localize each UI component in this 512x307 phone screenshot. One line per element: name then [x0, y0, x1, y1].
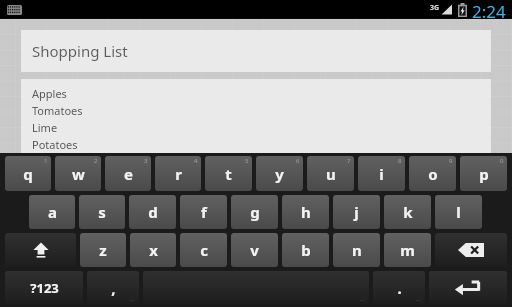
staticText: Tomatoes — [32, 103, 83, 118]
staticText: d — [148, 202, 158, 222]
staticText: 2 — [94, 157, 98, 165]
staticText: ?123 — [30, 279, 59, 297]
staticText: 7 — [347, 157, 351, 165]
staticText: 9 — [449, 157, 453, 165]
button[interactable]: l — [435, 195, 482, 229]
button[interactable]: ?123 — [5, 271, 83, 304]
button[interactable]: d — [129, 195, 176, 229]
staticText: 0 — [500, 157, 504, 165]
staticText: 2:24 — [472, 0, 506, 19]
button[interactable]: m — [384, 233, 431, 267]
staticText: l — [456, 202, 461, 222]
button[interactable]: Shopping List — [21, 30, 491, 72]
button[interactable]: w — [55, 156, 101, 191]
staticText: ... — [360, 295, 365, 303]
staticText: n — [352, 240, 362, 260]
staticText: , — [111, 278, 116, 298]
staticText: i — [379, 164, 384, 184]
button[interactable]: p — [460, 156, 507, 191]
staticText: t — [225, 164, 232, 184]
staticText: . — [397, 278, 402, 298]
button[interactable]: g — [231, 195, 278, 229]
staticText: z — [99, 240, 107, 260]
button[interactable]: . — [373, 271, 425, 304]
staticText: c — [200, 240, 208, 260]
staticText: b — [301, 240, 311, 260]
button[interactable]: i — [358, 156, 405, 191]
button[interactable]: Shift — [5, 233, 76, 267]
staticText: f — [201, 202, 207, 222]
staticText: j — [354, 202, 359, 222]
staticText: p — [479, 164, 489, 184]
button[interactable]: q — [5, 156, 51, 191]
staticText: k — [403, 202, 413, 222]
staticText: a — [48, 202, 57, 222]
button[interactable]: k — [384, 195, 431, 229]
button[interactable]: u — [307, 156, 354, 191]
staticText: Apples — [32, 86, 67, 101]
staticText: 4 — [194, 157, 198, 165]
staticText: q — [23, 164, 33, 184]
button[interactable]: Backspace — [435, 233, 507, 267]
staticText: g — [250, 202, 260, 222]
staticText: x — [149, 240, 158, 260]
staticText: 3 — [144, 157, 148, 165]
button[interactable]: n — [333, 233, 380, 267]
button[interactable]: e — [105, 156, 151, 191]
staticText: w — [72, 164, 85, 184]
staticText: m — [400, 240, 415, 260]
button[interactable]: v — [231, 233, 278, 267]
staticText: s — [98, 202, 106, 222]
staticText: 8 — [398, 157, 402, 165]
button[interactable]: x — [130, 233, 176, 267]
staticText: Potatoes — [32, 137, 78, 151]
staticText: o — [428, 164, 438, 184]
button[interactable]: s — [79, 195, 125, 229]
button[interactable]: t — [205, 156, 252, 191]
button[interactable]: Enter — [429, 271, 507, 304]
button[interactable]: a — [29, 195, 75, 229]
button[interactable]: Space — [143, 271, 369, 304]
button[interactable]: c — [180, 233, 227, 267]
button[interactable]: o — [409, 156, 456, 191]
button[interactable]: h — [282, 195, 329, 229]
button[interactable]: j — [333, 195, 380, 229]
staticText: r — [175, 164, 182, 184]
staticText: v — [250, 240, 259, 260]
staticText: Shopping List — [32, 41, 128, 61]
button[interactable]: , — [87, 271, 139, 304]
other: Keyboard notification — [7, 5, 22, 15]
staticText: 5 — [245, 157, 249, 165]
button[interactable]: Apples — [21, 79, 491, 153]
button[interactable]: y — [256, 156, 303, 191]
staticText: h — [301, 202, 311, 222]
staticText: Lime — [32, 120, 58, 135]
button[interactable]: z — [80, 233, 126, 267]
button[interactable]: f — [180, 195, 227, 229]
staticText: 6 — [296, 157, 300, 165]
staticText: y — [275, 164, 284, 184]
staticText: e — [124, 164, 133, 184]
staticText: 1 — [44, 157, 48, 165]
button[interactable]: b — [282, 233, 329, 267]
staticText: 3G — [430, 3, 440, 13]
button[interactable]: r — [155, 156, 201, 191]
staticText: u — [326, 164, 336, 184]
staticText: ... — [416, 295, 421, 303]
staticText: ... — [130, 295, 135, 303]
